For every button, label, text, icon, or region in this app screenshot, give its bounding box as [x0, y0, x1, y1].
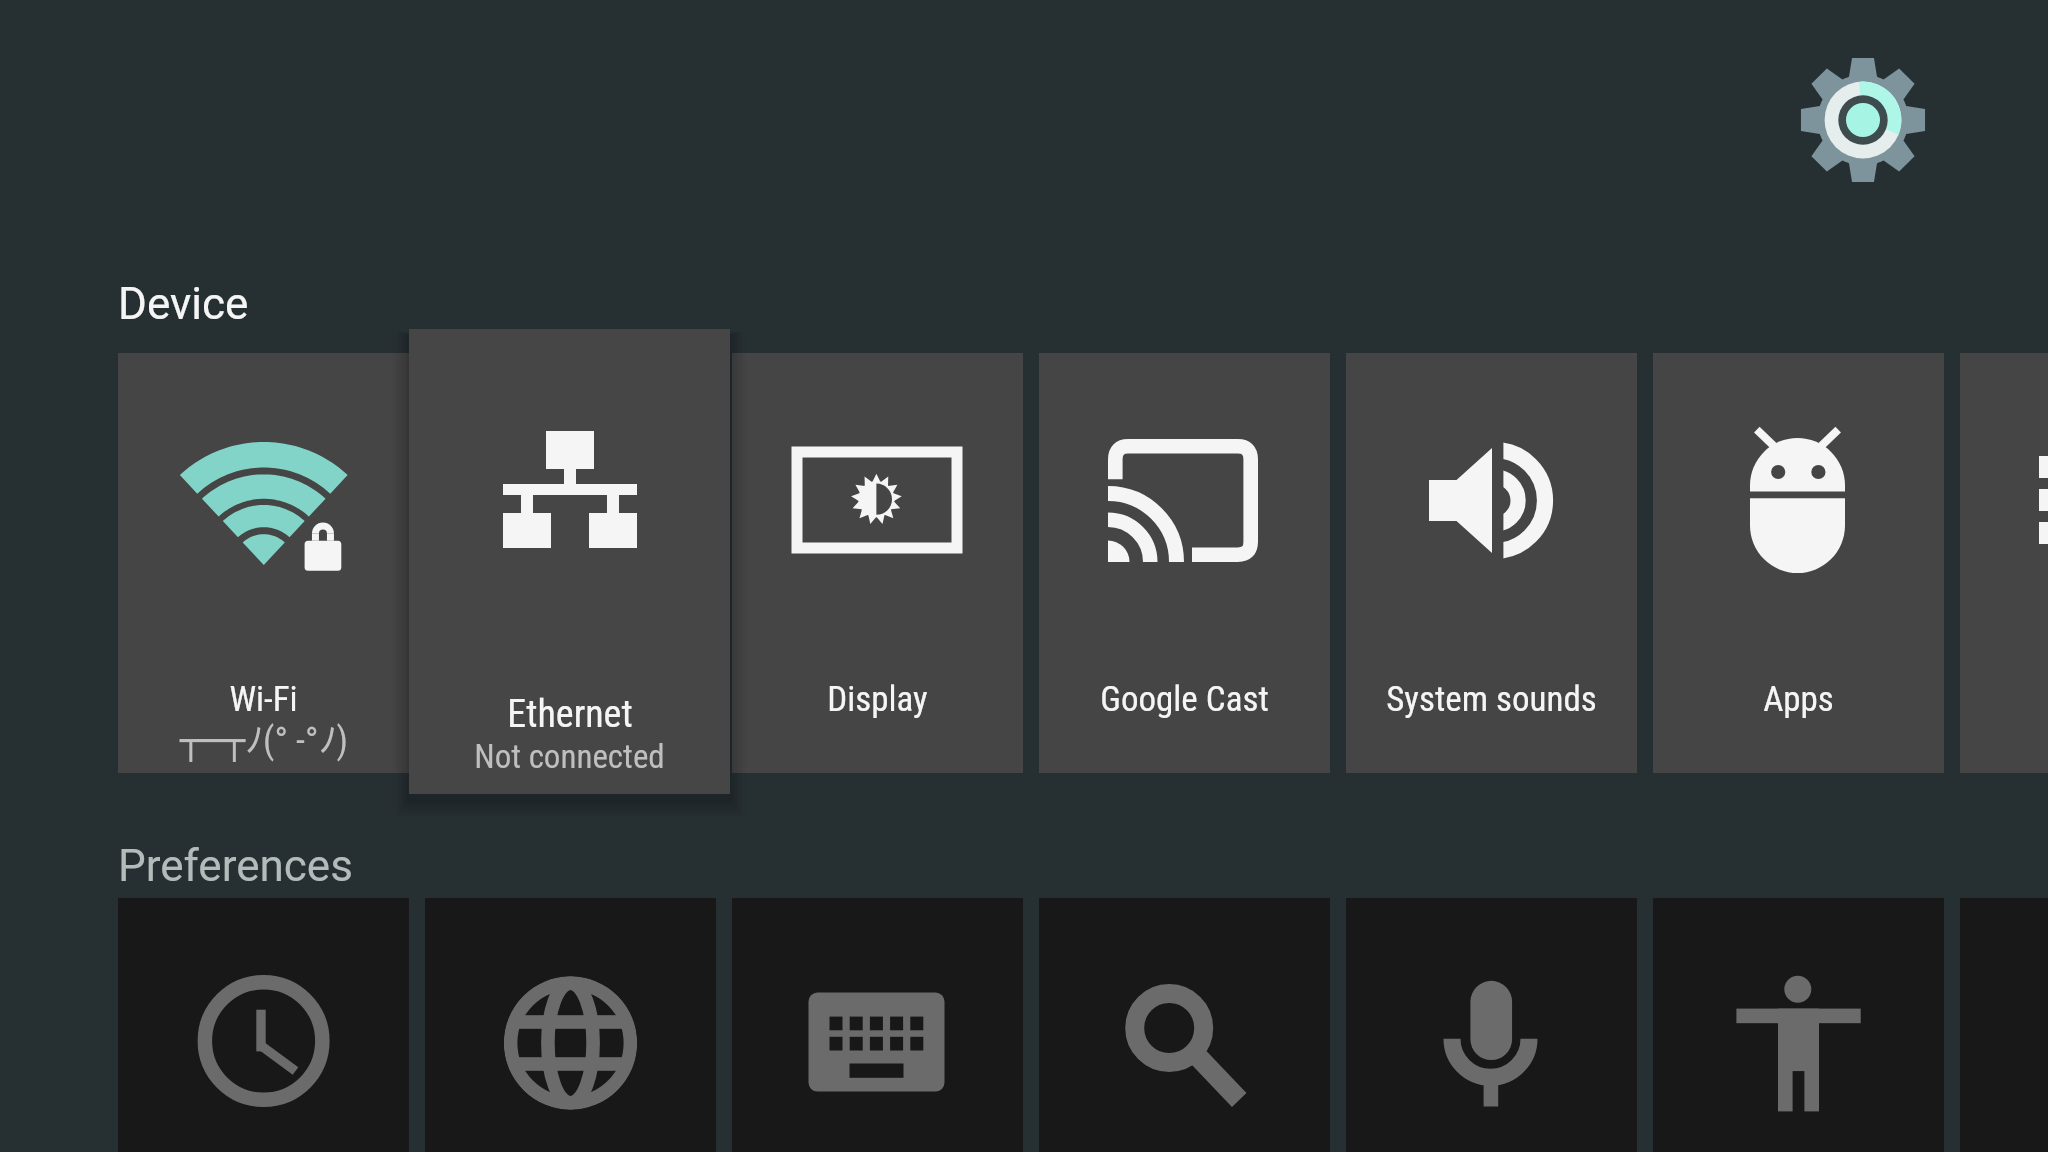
button[interactable]: Keyboard [732, 898, 1023, 1152]
staticText: Not connected [474, 737, 665, 776]
button[interactable]: Ethernet [409, 329, 730, 794]
button[interactable]: More settings [1960, 353, 2048, 773]
button[interactable]: Display [732, 353, 1023, 773]
button[interactable]: Date & time [118, 898, 409, 1152]
staticText: Apps [1763, 679, 1834, 720]
button[interactable]: Device [118, 278, 249, 330]
button[interactable]: Accessibility [1653, 898, 1944, 1152]
button[interactable]: Language [425, 898, 716, 1152]
button[interactable]: Google Cast [1039, 353, 1330, 773]
button[interactable]: System sounds [1346, 353, 1637, 773]
staticText: Device [118, 278, 249, 330]
staticText: Google Cast [1100, 679, 1269, 720]
button[interactable]: Wi-Fi [118, 353, 409, 773]
staticText: Ethernet [507, 692, 633, 737]
button[interactable]: Speech [1346, 898, 1637, 1152]
button[interactable]: Preferences [118, 840, 353, 892]
staticText: Display [827, 679, 928, 720]
button[interactable]: Settings [1800, 57, 1926, 183]
button[interactable]: Apps [1653, 353, 1944, 773]
staticText: Wi-Fi [229, 679, 298, 720]
staticText: Preferences [118, 840, 353, 892]
button[interactable]: Search [1039, 898, 1330, 1152]
staticText: System sounds [1386, 679, 1597, 720]
staticText: ┬─┬ﾉ(° -°ﾉ) [180, 720, 348, 762]
